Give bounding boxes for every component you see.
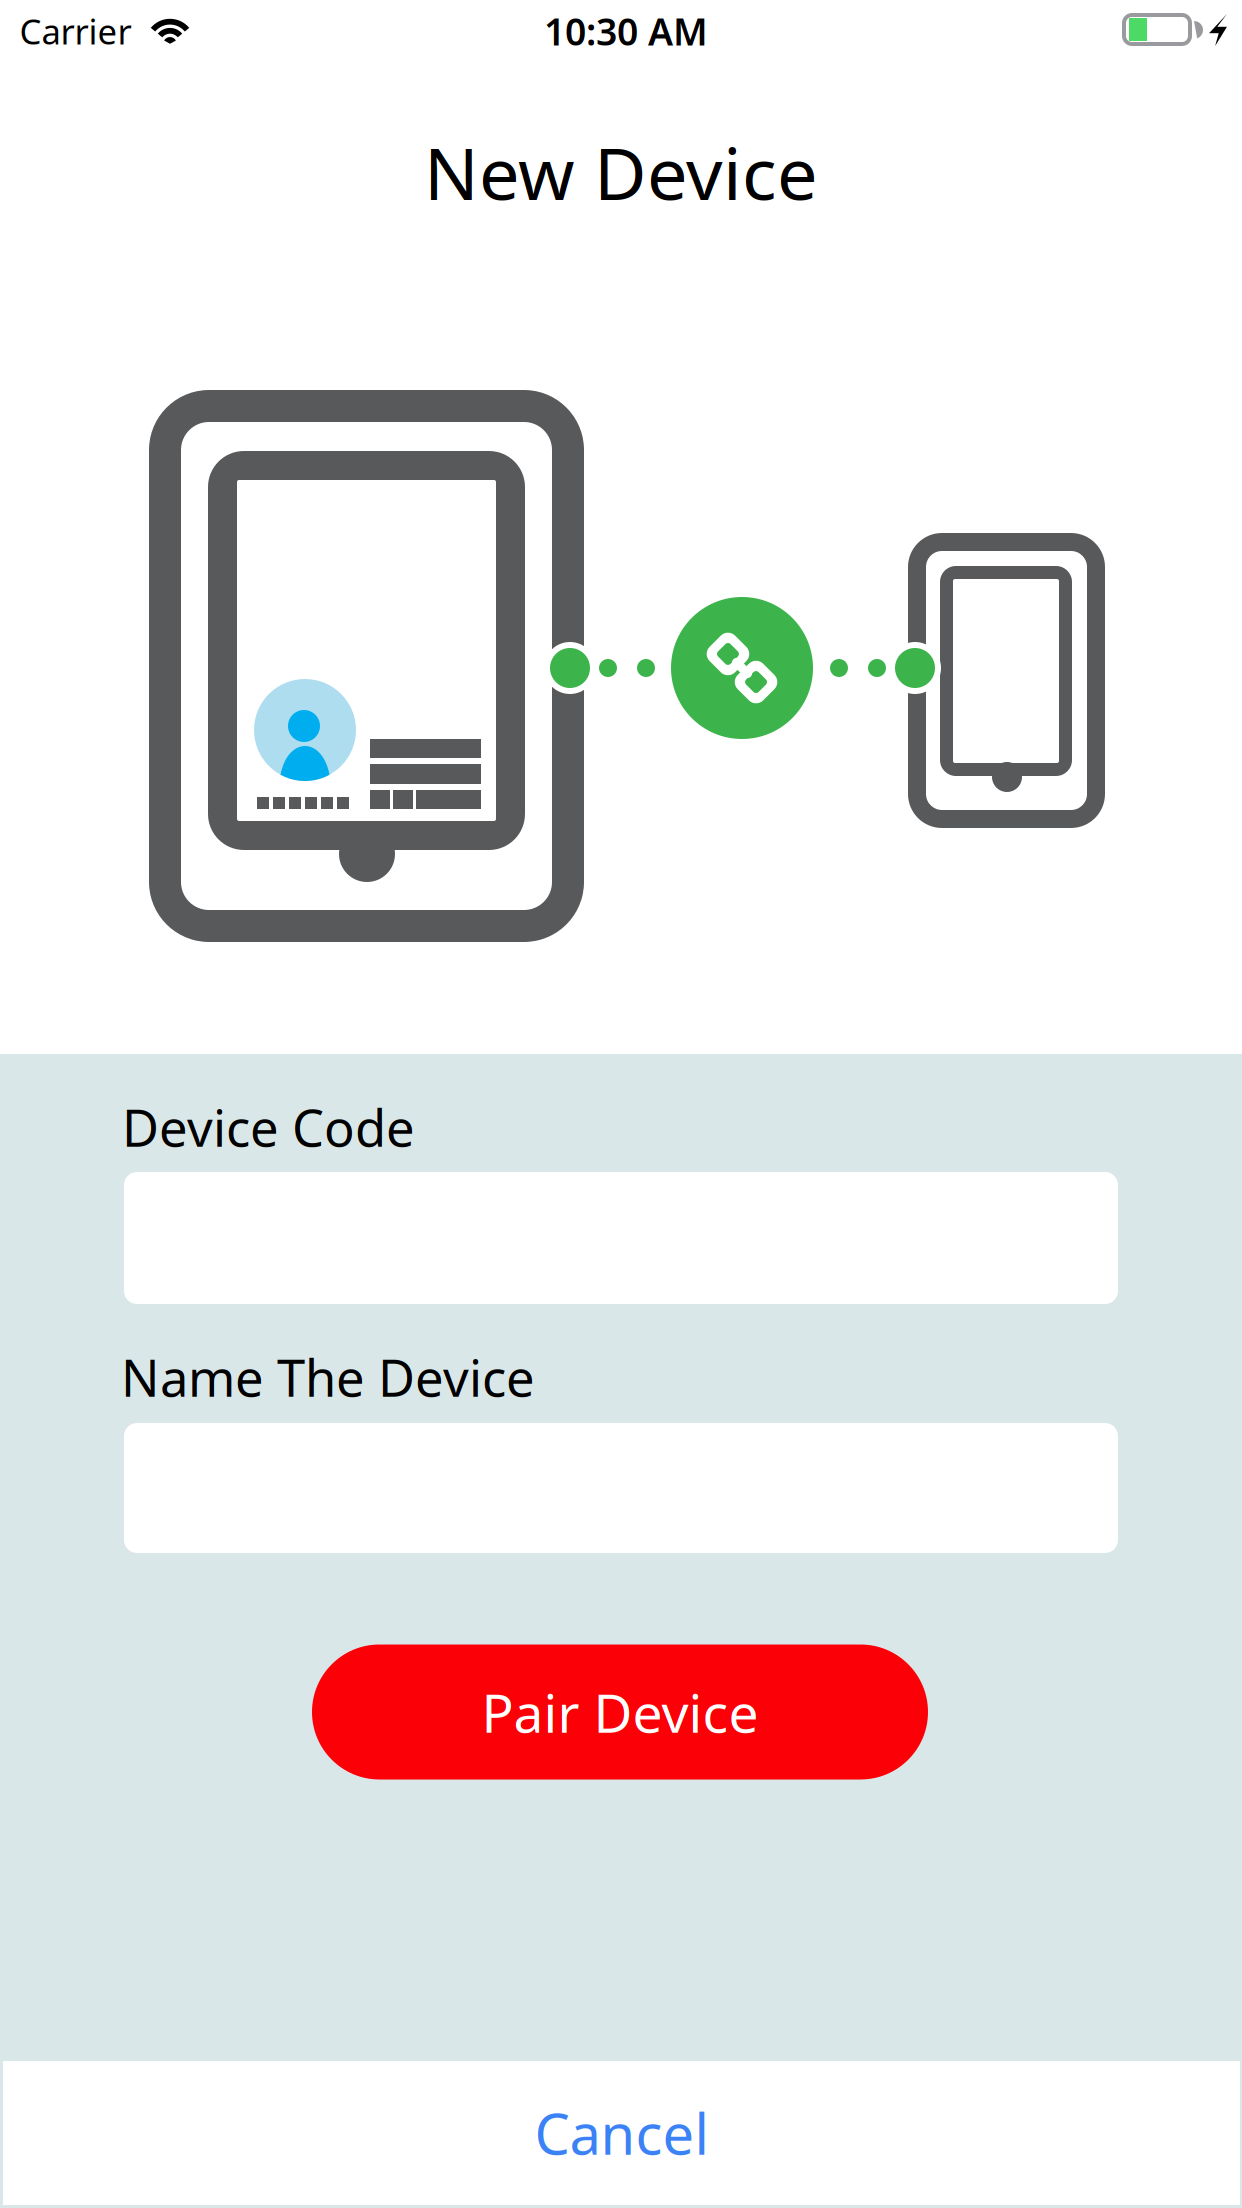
staticText: Pair Device (481, 1677, 758, 1747)
staticText: 10:30 AM (544, 6, 708, 56)
staticText: Name The Device (121, 1343, 535, 1411)
button[interactable]: Pair Device (312, 1644, 928, 1779)
staticText: Carrier (19, 8, 131, 54)
button[interactable]: Cancel (3, 2061, 1240, 2205)
staticText: Device Code (122, 1093, 415, 1161)
staticText: Cancel (534, 2096, 708, 2170)
staticText: New Device (424, 124, 818, 220)
